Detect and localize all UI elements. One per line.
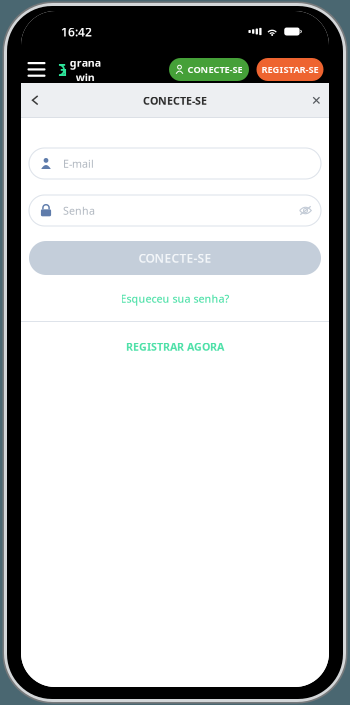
button[interactable]: REGISTRAR AGORA [126,339,224,354]
button[interactable]: granawin home [52,61,101,79]
staticText: grana [70,56,101,70]
staticText: REGISTRAR AGORA [126,339,224,354]
staticText: Esqueceu sua senha? [120,291,229,306]
button[interactable]: Menu [27,62,45,77]
staticText: CONECTE-SE [187,63,242,76]
staticText: E-mail [63,156,94,171]
staticText: 16:42 [61,24,92,40]
staticText: win [76,70,95,84]
staticText: Senha [63,203,95,218]
button[interactable]: Close [312,96,320,104]
button[interactable]: Esqueceu sua senha? [120,291,229,306]
button[interactable]: CONECTE-SE [29,241,321,275]
button[interactable]: CONECTE-SE [169,58,249,81]
staticText: REGISTAR-SE [261,63,318,76]
staticText: CONECTE-SE [138,250,211,266]
staticText: CONECTE-SE [143,93,207,108]
button[interactable]: REGISTAR-SE [256,58,323,81]
button[interactable]: Back [31,95,39,105]
